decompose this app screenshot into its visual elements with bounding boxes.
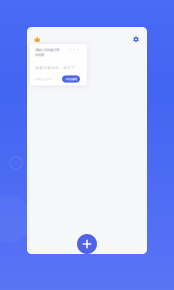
staticText: 开始编辑 <box>65 77 77 81</box>
staticText: ••• <box>68 47 80 53</box>
button[interactable]: Settings <box>129 33 142 46</box>
staticText: 我爱的我中年，请写下 l… <box>35 65 80 70</box>
staticText: 请输入您的备忘录的标题 <box>35 47 59 57</box>
staticText: 2024-01-11 10:24 <box>35 77 51 81</box>
button[interactable]: Add note <box>73 230 101 258</box>
button[interactable]: 请输入您的备忘录的标题 <box>30 44 87 85</box>
